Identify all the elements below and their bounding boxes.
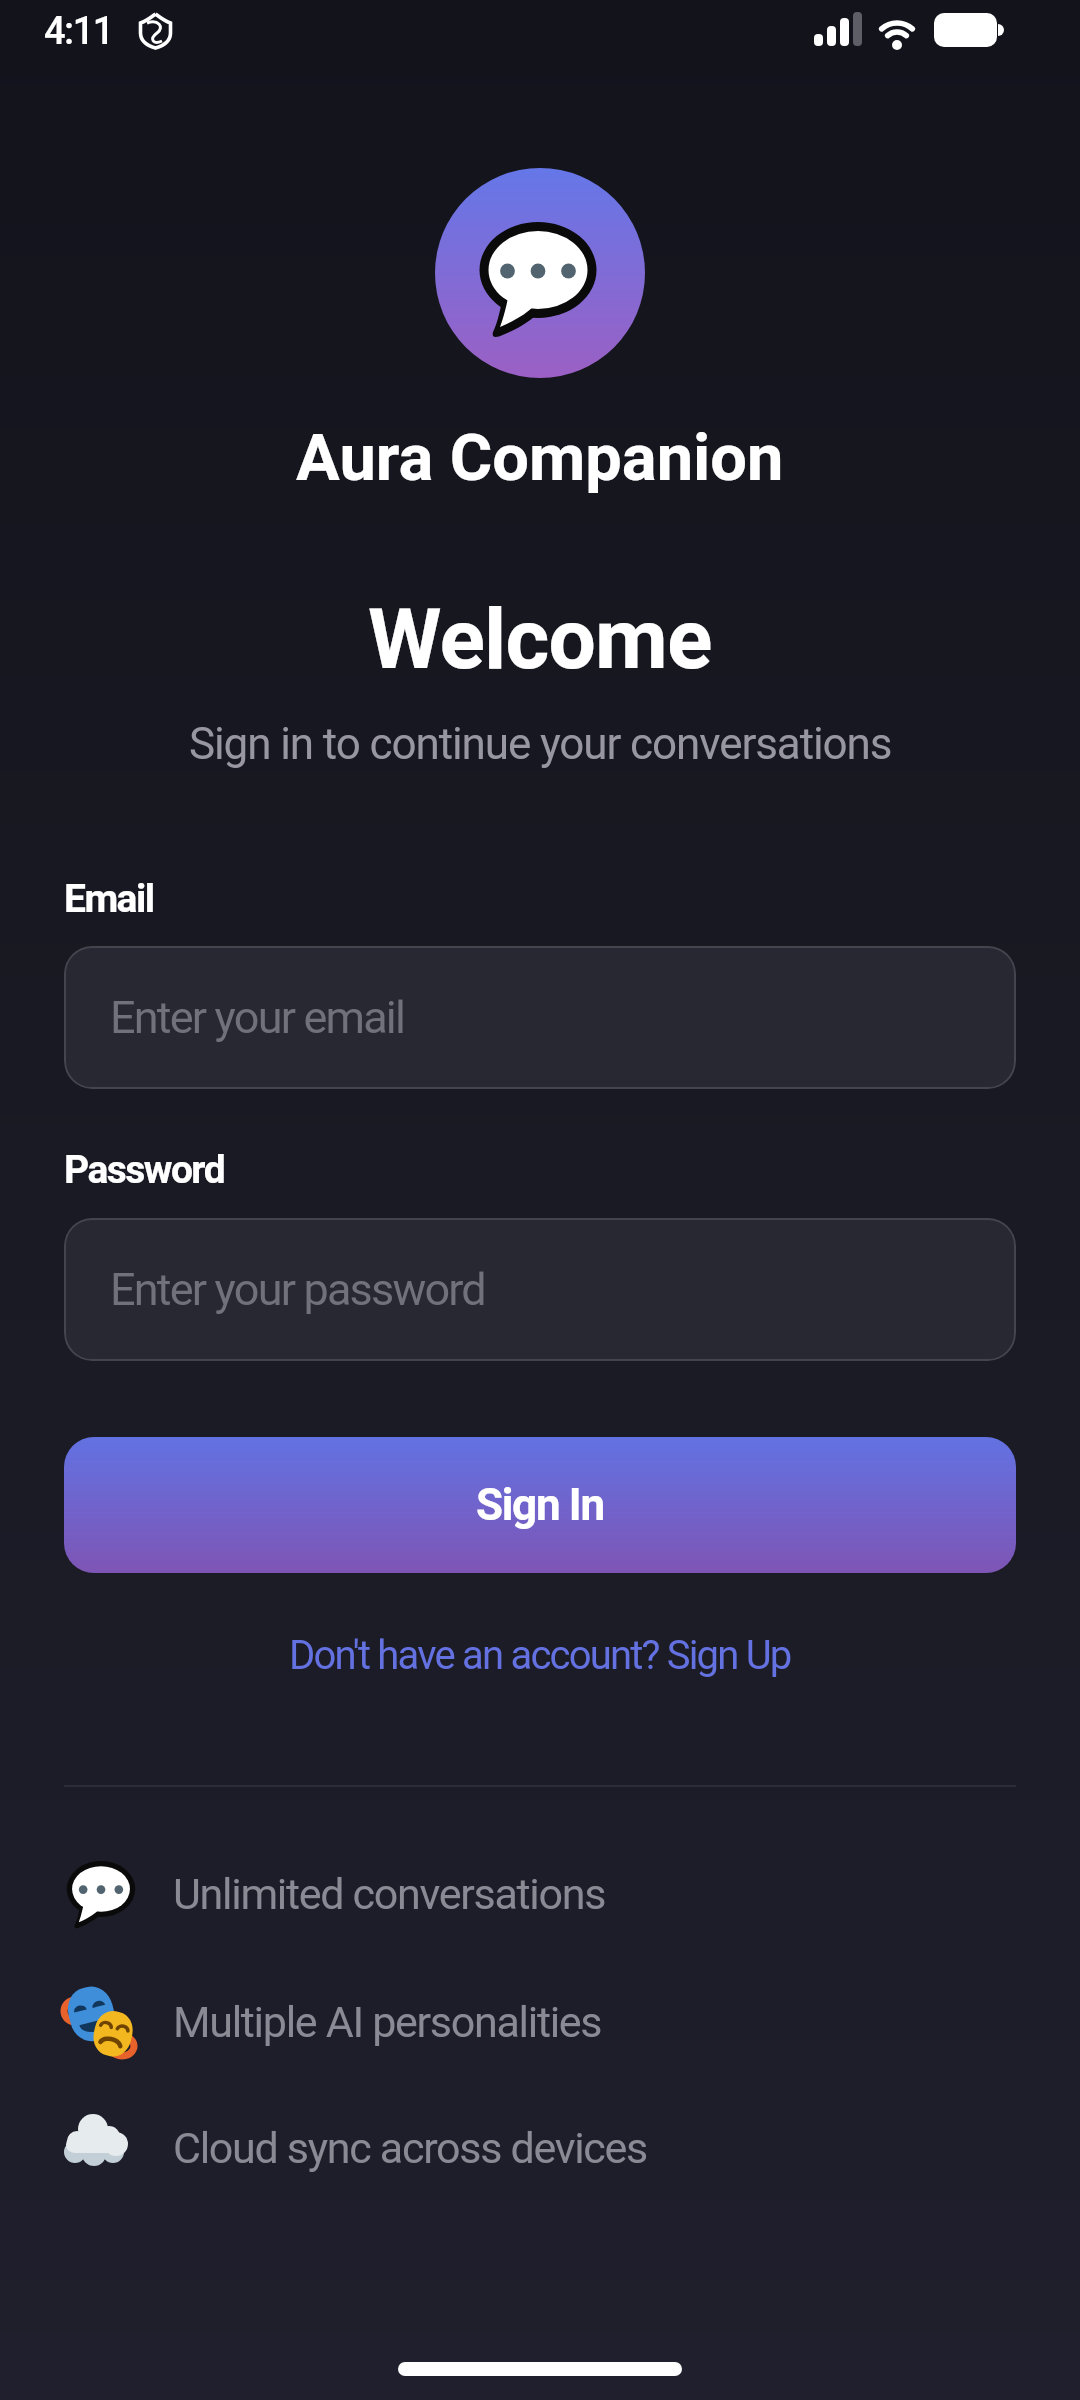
- staticText: Aura Companion: [296, 420, 784, 496]
- button[interactable]: Enter your password: [64, 1218, 1016, 1361]
- staticText: 4:11: [44, 9, 113, 54]
- button[interactable]: Cloud sync across devices: [64, 2108, 1080, 2188]
- staticText: Enter your email: [110, 991, 405, 1044]
- staticText: Cloud sync across devices: [173, 2123, 647, 2173]
- staticText: Welcome: [368, 590, 712, 688]
- staticText: Sign in to continue your conversations: [189, 718, 892, 770]
- button[interactable]: Sign In: [64, 1437, 1016, 1573]
- button[interactable]: Multiple AI personalities: [64, 1982, 1080, 2062]
- staticText: Password: [64, 1147, 225, 1193]
- button[interactable]: Unlimited conversations: [64, 1854, 1080, 1934]
- staticText: Unlimited conversations: [173, 1869, 606, 1919]
- staticText: Don't have an account? Sign Up: [289, 1632, 791, 1679]
- staticText: Sign In: [476, 1479, 604, 1531]
- staticText: Email: [64, 876, 154, 922]
- button[interactable]: Enter your email: [64, 946, 1016, 1089]
- staticText: Multiple AI personalities: [173, 1997, 602, 2047]
- button[interactable]: Don't have an account? Sign Up: [0, 1627, 1080, 1683]
- staticText: Enter your password: [110, 1263, 485, 1316]
